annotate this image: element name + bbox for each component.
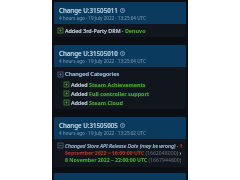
staticText: Changed Store API Release Date (may be w… — [65, 142, 183, 163]
staticText: Added Full controller support — [71, 90, 150, 97]
button[interactable]: Changed Store API Release Date (may be w… — [54, 139, 186, 167]
button[interactable]: Change U:31505005 — [54, 117, 186, 139]
button[interactable]: Added Full controller support — [54, 89, 186, 98]
other: Details — [120, 123, 125, 128]
button[interactable]: Added Steam Achievements — [54, 80, 186, 89]
button[interactable]: Added 3rd-Party DRM · Denuvo — [54, 26, 186, 35]
staticText: Change U:31505010 — [59, 49, 118, 57]
button[interactable]: Changed Categories — [54, 69, 186, 80]
staticText: Change U:31505005 — [59, 121, 118, 129]
button[interactable]: Change U:31505010 — [54, 45, 186, 67]
staticText: 4 hours ago · 19 July 2022 · 13:25:02 UT… — [59, 130, 146, 136]
staticText: Added 3rd-Party DRM · Denuvo — [65, 27, 146, 34]
staticText: Added Steam Achievements — [71, 81, 146, 88]
staticText: 4 hours ago · 19 July 2022 · 13:25:04 UT… — [59, 58, 146, 64]
other: Details — [120, 8, 125, 13]
staticText: Change U:31505011 — [59, 6, 118, 14]
button[interactable]: Added Steam Cloud — [54, 98, 186, 107]
staticText: Added Steam Cloud — [71, 99, 123, 106]
other: Details — [120, 51, 125, 56]
staticText: 4 hours ago · 19 July 2022 · 13:25:04 UT… — [59, 15, 146, 21]
staticText: Changed Categories — [65, 70, 120, 78]
button[interactable]: Change U:31505011 — [54, 2, 186, 24]
